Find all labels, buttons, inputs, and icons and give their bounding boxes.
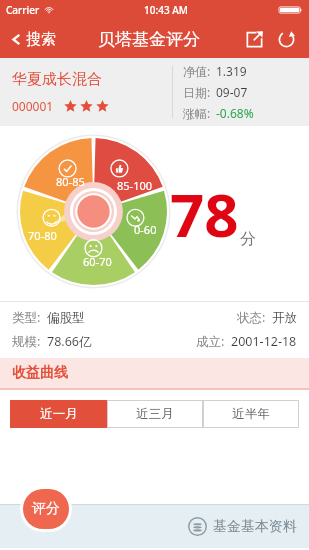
- staticText: 涨幅:: [183, 105, 211, 121]
- staticText: 评分: [32, 500, 60, 518]
- staticText: 000001: [12, 98, 54, 114]
- button[interactable]: 基金基本资料: [176, 511, 309, 542]
- staticText: 60-70: [83, 254, 112, 269]
- button[interactable]: 评分: [23, 489, 69, 529]
- staticText: 状态:: [237, 309, 266, 326]
- staticText: 78.66亿: [47, 333, 92, 350]
- staticText: 成立:: [196, 333, 225, 350]
- staticText: 偏股型: [47, 310, 85, 326]
- staticText: 搜索: [26, 30, 56, 49]
- button[interactable]: 近三月: [107, 400, 203, 428]
- staticText: 净值:: [183, 63, 211, 79]
- staticText: 78: [170, 173, 239, 255]
- button[interactable]: Share: [239, 24, 269, 54]
- staticText: 基金基本资料: [213, 518, 297, 536]
- button[interactable]: 近一月: [10, 400, 107, 428]
- staticText: 开放: [272, 310, 297, 326]
- button[interactable]: 近半年: [203, 400, 299, 428]
- staticText: 80-85: [56, 174, 85, 189]
- button[interactable]: Refresh: [271, 24, 301, 54]
- staticText: 类型:: [12, 309, 41, 326]
- staticText: 0-60: [134, 222, 157, 237]
- button[interactable]: 搜索: [6, 26, 60, 53]
- staticText: 收益曲线: [12, 364, 68, 382]
- staticText: 09-07: [216, 84, 248, 100]
- staticText: 华夏成长混合: [12, 70, 102, 89]
- staticText: 1.319: [216, 63, 247, 79]
- staticText: 10:43 AM: [144, 3, 188, 17]
- staticText: 70-80: [28, 228, 57, 243]
- staticText: 近三月: [136, 406, 174, 422]
- staticText: 近一月: [40, 406, 78, 422]
- staticText: 2001-12-18: [231, 333, 297, 350]
- staticText: 近半年: [232, 406, 270, 422]
- staticText: 贝塔基金评分: [98, 29, 200, 50]
- staticText: 规模:: [12, 333, 41, 350]
- staticText: 分: [240, 229, 256, 249]
- staticText: -0.68%: [216, 105, 254, 121]
- staticText: Carrier: [6, 3, 40, 17]
- staticText: 85-100: [117, 178, 153, 193]
- staticText: 日期:: [183, 84, 211, 100]
